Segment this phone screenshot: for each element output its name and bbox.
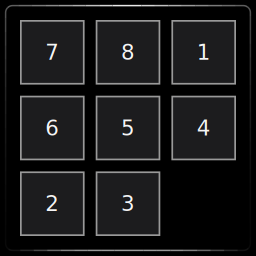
button[interactable]: 7 xyxy=(21,21,84,84)
staticText: 1 xyxy=(197,40,211,65)
button[interactable]: 8 xyxy=(97,21,159,84)
button[interactable]: 2 xyxy=(21,172,84,235)
button[interactable]: 4 xyxy=(172,97,235,159)
button[interactable]: 6 xyxy=(21,97,84,159)
staticText: 8 xyxy=(121,40,135,65)
staticText: 4 xyxy=(197,116,211,140)
button[interactable]: 3 xyxy=(97,172,159,235)
staticText: 6 xyxy=(45,116,59,140)
staticText: 3 xyxy=(121,191,135,216)
staticText: 2 xyxy=(45,191,59,216)
staticText: 5 xyxy=(121,116,135,140)
button[interactable]: 1 xyxy=(172,21,235,84)
staticText: 7 xyxy=(45,40,59,65)
button[interactable]: 5 xyxy=(97,97,159,159)
